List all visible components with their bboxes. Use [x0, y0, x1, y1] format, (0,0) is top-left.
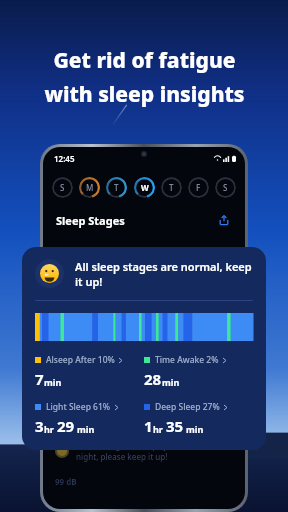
button[interactable]: Share — [216, 212, 232, 228]
staticText: M — [86, 182, 94, 193]
staticText: with sleep insights — [44, 80, 245, 109]
button[interactable]: Time Awake 2% — [144, 354, 253, 389]
staticText: Deep Sleep 27% — [155, 401, 220, 413]
staticText: 35 — [166, 416, 184, 436]
button[interactable]: T — [106, 177, 127, 198]
button[interactable]: M — [79, 177, 100, 198]
staticText: hr — [44, 423, 54, 435]
staticText: 7 — [35, 369, 44, 389]
button[interactable]: S — [52, 177, 73, 198]
staticText: Alseep After 10% — [46, 354, 115, 366]
button[interactable]: S — [215, 177, 236, 198]
staticText: 12:45 — [54, 153, 75, 164]
staticText: S — [223, 182, 228, 193]
staticText: Sleep Stages — [56, 213, 125, 228]
staticText: 3 — [35, 416, 44, 436]
staticText: 29 — [57, 416, 75, 436]
staticText: 28 — [144, 369, 162, 389]
staticText: T — [114, 182, 119, 193]
button[interactable]: Light Sleep 61% — [35, 401, 144, 436]
staticText: W — [141, 182, 149, 193]
staticText: min — [162, 376, 180, 388]
button[interactable]: F — [188, 177, 209, 198]
staticText: Time Awake 2% — [155, 354, 219, 366]
staticText: You had a good sleep cycle last night, p… — [76, 440, 195, 462]
staticText: min — [186, 423, 204, 435]
staticText: 1 — [144, 416, 153, 436]
staticText: Light Sleep 61% — [46, 401, 111, 413]
staticText: min — [44, 376, 62, 388]
staticText: F — [196, 182, 201, 193]
button[interactable]: Alseep After 10% — [35, 354, 144, 389]
staticText: All sleep stages are normal, keep it up! — [75, 259, 253, 289]
staticText: S — [60, 182, 65, 193]
staticText: 99 dB — [55, 476, 77, 487]
button[interactable]: W — [134, 177, 155, 198]
button[interactable]: T — [161, 177, 182, 198]
staticText: T — [169, 182, 174, 193]
staticText: hr — [153, 423, 163, 435]
staticText: Get rid of fatigue — [53, 46, 236, 75]
staticText: min — [77, 423, 95, 435]
button[interactable]: Deep Sleep 27% — [144, 401, 253, 436]
